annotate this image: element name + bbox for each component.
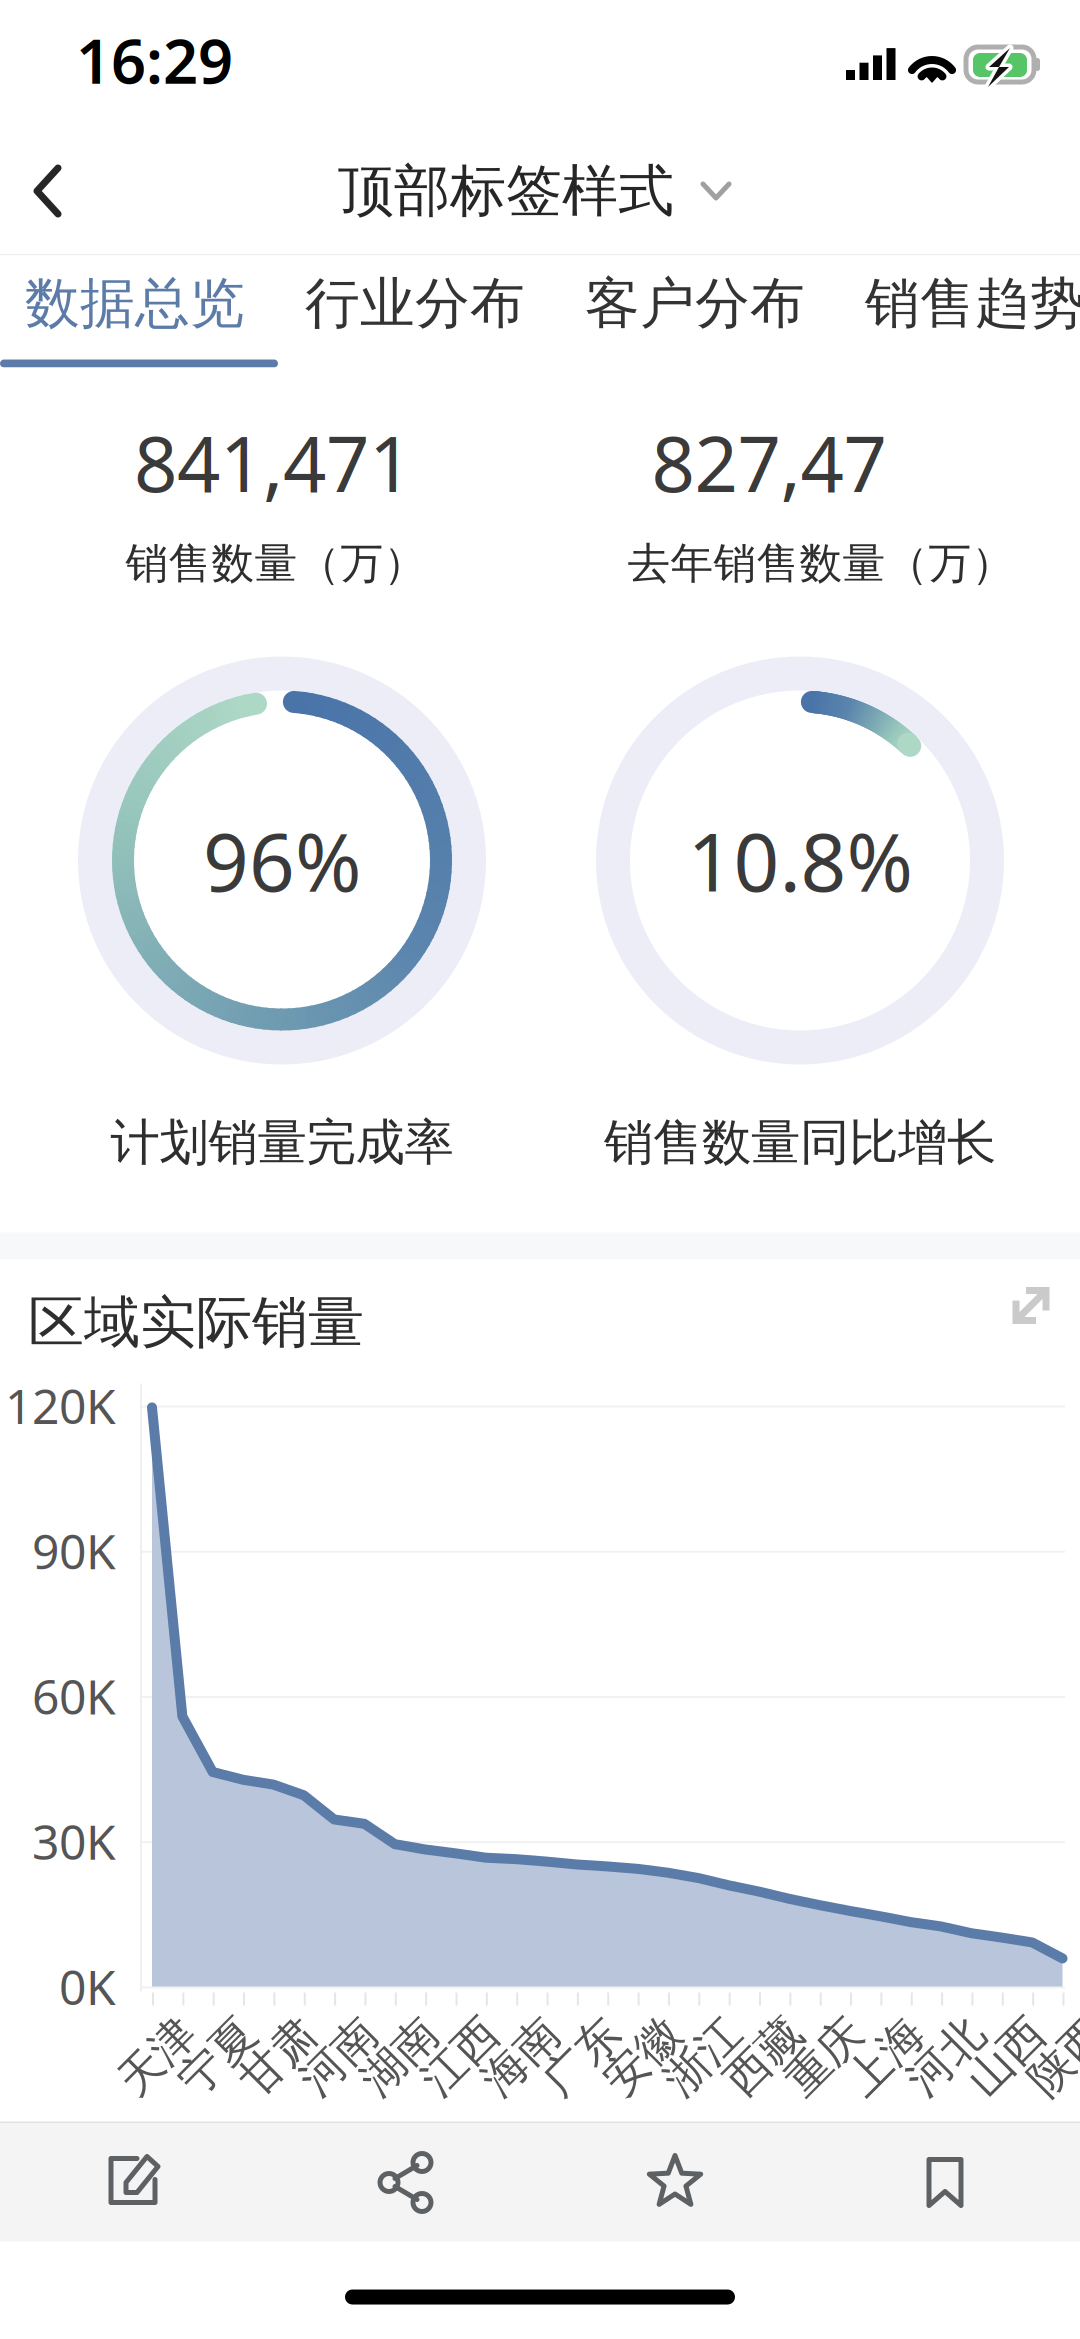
staticText: 96% [203, 807, 361, 914]
staticText: 30K [32, 1809, 116, 1873]
staticText: 甘肃 [221, 1998, 309, 2052]
staticText: 10.8% [687, 807, 912, 914]
staticText: 宁夏 [161, 1998, 249, 2052]
button[interactable]: Favourite [540, 2123, 810, 2241]
staticText: 西藏 [707, 1998, 795, 2052]
staticText: 827,47 [651, 412, 886, 513]
staticText: 河北 [889, 1998, 977, 2052]
staticText: 山西 [950, 1998, 1038, 2052]
staticText: 天津 [100, 1998, 188, 2052]
staticText: 841,471 [134, 412, 412, 513]
staticText: 90K [32, 1519, 116, 1583]
staticText: 上海 [828, 1998, 916, 2052]
button[interactable]: Bookmark [810, 2123, 1080, 2241]
button[interactable]: Expand chart [997, 1271, 1065, 1339]
staticText: 销售数量同比增长 [604, 1112, 996, 1173]
staticText: 湖南 [343, 1998, 431, 2052]
staticText: 浙江 [646, 1998, 734, 2052]
staticText: 行业分布 [305, 270, 525, 337]
staticText: 区域实际销量 [28, 1288, 364, 1357]
staticText: 安徽 [586, 1998, 674, 2052]
staticText: 河南 [282, 1998, 370, 2052]
button[interactable]: 区域实际销量 [0, 1285, 548, 1359]
staticText: 销售数量（万） [125, 537, 426, 590]
button[interactable]: Switch dashboard [690, 168, 742, 214]
button[interactable]: Compose [0, 2123, 270, 2241]
staticText: 江西 [403, 1998, 491, 2052]
staticText: 客户分布 [585, 270, 805, 337]
staticText: 重庆 [768, 1998, 856, 2052]
staticText: 120K [5, 1374, 116, 1437]
button[interactable]: 数据总览 [0, 255, 271, 351]
staticText: 计划销量完成率 [110, 1112, 453, 1173]
button[interactable]: 行业分布 [279, 255, 551, 351]
button[interactable]: Share [270, 2123, 540, 2241]
button[interactable]: 销售趋势 [839, 255, 1080, 351]
staticText: 陕西 [1010, 1998, 1080, 2052]
button[interactable]: Back [0, 134, 100, 248]
staticText: 广东 [525, 1998, 613, 2052]
button[interactable]: 客户分布 [559, 255, 831, 351]
staticText: 销售趋势 [865, 270, 1080, 337]
staticText: 顶部标签样式 [338, 157, 674, 225]
staticText: 0K [59, 1955, 116, 2018]
staticText: 海南 [464, 1998, 552, 2052]
staticText: 去年销售数量（万） [627, 537, 1014, 590]
staticText: 60K [32, 1664, 116, 1728]
staticText: 16:29 [76, 19, 233, 101]
staticText: 数据总览 [25, 270, 245, 337]
